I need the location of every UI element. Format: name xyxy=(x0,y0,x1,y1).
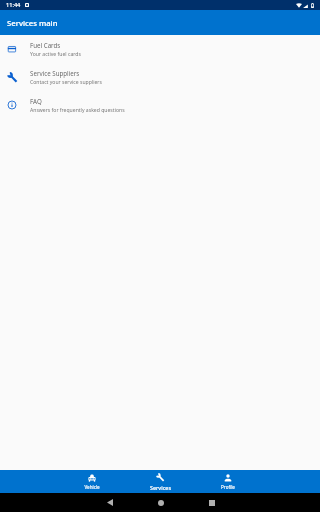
staticText: Fuel Cards xyxy=(30,41,61,49)
staticText: Services main xyxy=(7,18,58,28)
button[interactable]: FAQ xyxy=(0,91,320,119)
staticText: Service Suppliers xyxy=(30,69,80,77)
staticText: Vehicle xyxy=(84,484,100,490)
button[interactable]: Recents xyxy=(186,493,237,512)
staticText: FAQ xyxy=(30,97,42,105)
staticText: Your active fuel cards xyxy=(30,51,81,58)
button[interactable]: Services xyxy=(126,470,194,493)
button[interactable]: Back xyxy=(84,493,135,512)
button[interactable]: Fuel Cards xyxy=(0,35,320,63)
staticText: Profile xyxy=(221,484,235,490)
button[interactable]: Vehicle xyxy=(58,470,126,493)
staticText: 11:44 xyxy=(6,1,21,9)
button[interactable]: Profile xyxy=(194,470,262,493)
staticText: Answers for frequently asked questions xyxy=(30,107,125,114)
staticText: Contact your service suppliers xyxy=(30,79,102,86)
button[interactable]: Home xyxy=(135,493,186,512)
staticText: Services xyxy=(150,484,171,491)
button[interactable]: Service Suppliers xyxy=(0,63,320,91)
